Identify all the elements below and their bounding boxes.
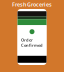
staticText: Order Confirmed: [21, 37, 43, 48]
staticText: Fresh Groceries: [12, 1, 52, 8]
